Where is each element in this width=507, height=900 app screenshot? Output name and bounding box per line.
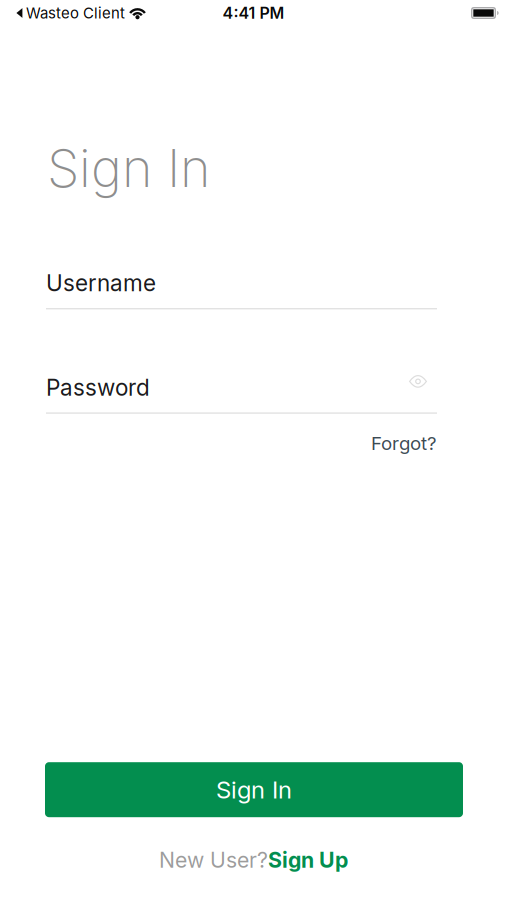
staticText: Sign Up (268, 847, 348, 873)
button[interactable]: New User? (159, 847, 348, 873)
staticText: Sign In (216, 775, 292, 804)
staticText: Username (46, 269, 156, 297)
staticText: Sign In (47, 136, 210, 199)
button[interactable]: Sign In (45, 762, 463, 817)
button[interactable]: Forgot? (371, 432, 437, 454)
staticText: Forgot? (371, 432, 437, 454)
staticText: New User? (159, 847, 268, 873)
staticText: 4:41 PM (222, 3, 284, 23)
staticText: Password (46, 374, 150, 401)
staticText: Wasteo Client (26, 4, 125, 22)
button[interactable]: Back to Wasteo Client (16, 4, 125, 22)
button[interactable]: Show password (409, 375, 437, 399)
